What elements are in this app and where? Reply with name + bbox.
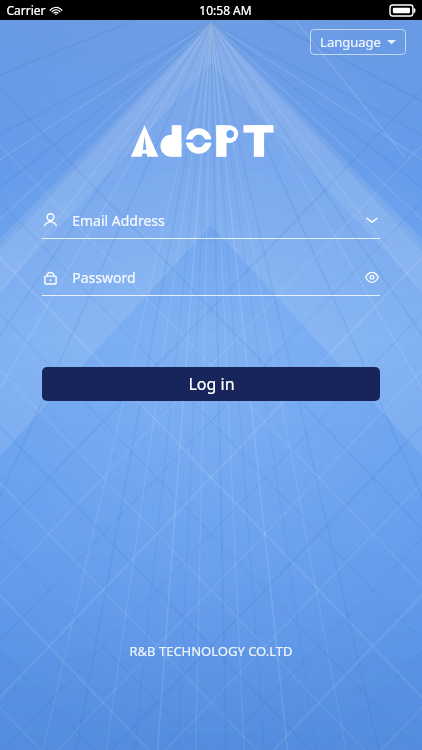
other: AdOPT xyxy=(130,123,292,159)
staticText: Email Address xyxy=(72,211,165,230)
staticText: Carrier xyxy=(6,2,46,18)
staticText: Log in xyxy=(188,373,235,395)
other: Password xyxy=(42,269,59,286)
staticText: Language xyxy=(320,33,381,51)
other: Account xyxy=(42,212,59,229)
button[interactable]: Log in xyxy=(42,367,380,401)
other: Battery xyxy=(390,5,416,16)
other: Wi-Fi xyxy=(50,4,62,16)
staticText: 10:58 AM xyxy=(199,2,252,18)
button[interactable]: Language xyxy=(310,29,406,55)
button[interactable]: Password xyxy=(42,262,380,296)
button[interactable]: Show account list xyxy=(364,212,380,228)
button[interactable]: Show password xyxy=(364,269,380,285)
button[interactable]: Account xyxy=(42,205,380,239)
staticText: R&B TECHNOLOGY CO.LTD xyxy=(129,642,293,660)
staticText: Password xyxy=(72,268,136,287)
